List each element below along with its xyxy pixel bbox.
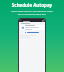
button[interactable]: Back <box>20 20 22 22</box>
button[interactable] <box>20 31 44 33</box>
button[interactable] <box>20 25 44 30</box>
staticText: Schedule Autopay <box>0 2 64 8</box>
staticText: Never worry about a late payment again. … <box>4 10 60 16</box>
